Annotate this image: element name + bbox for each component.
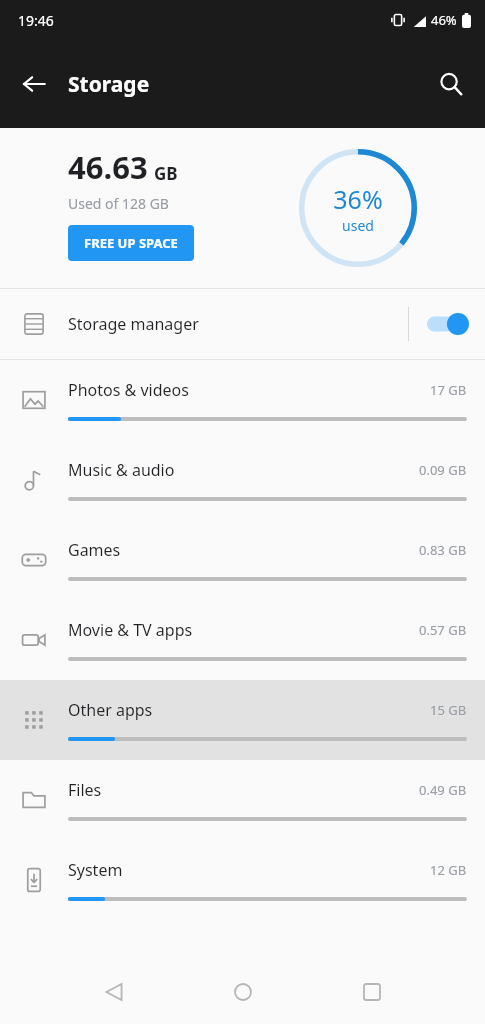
button[interactable]: Storage manager — [0, 289, 485, 359]
button[interactable]: Movie & TV apps — [0, 600, 485, 680]
staticText: Files — [68, 779, 419, 801]
staticText: Games — [68, 539, 419, 561]
staticText: 36% — [333, 182, 383, 216]
button[interactable]: FREE UP SPACE — [68, 225, 194, 261]
staticText: 0.09 GB — [419, 461, 467, 479]
staticText: 12 GB — [430, 861, 467, 879]
staticText: Used of 128 GB — [68, 194, 169, 213]
staticText: FREE UP SPACE — [84, 234, 178, 252]
button[interactable]: Photos & videos — [0, 360, 485, 440]
staticText: 15 GB — [430, 701, 467, 719]
staticText: 0.49 GB — [419, 781, 467, 799]
staticText: System — [68, 859, 430, 881]
button[interactable]: System — [0, 840, 485, 920]
staticText: 46.63 — [68, 146, 148, 188]
button[interactable]: Back — [90, 968, 138, 1016]
staticText: used — [342, 216, 374, 235]
button[interactable]: Games — [0, 520, 485, 600]
staticText: 19:46 — [18, 11, 54, 30]
staticText: Movie & TV apps — [68, 619, 419, 641]
staticText: 17 GB — [430, 381, 467, 399]
button[interactable]: Search — [427, 60, 475, 108]
staticText: Storage manager — [68, 313, 408, 335]
button[interactable]: Recent apps — [348, 968, 396, 1016]
button[interactable]: Home — [219, 968, 267, 1016]
button[interactable]: Music & audio — [0, 440, 485, 520]
staticText: 0.83 GB — [419, 541, 467, 559]
staticText: 46% — [431, 11, 457, 29]
staticText: Music & audio — [68, 459, 419, 481]
staticText: 0.57 GB — [419, 621, 467, 639]
button[interactable]: Storage manager toggle — [409, 289, 485, 359]
staticText: Storage — [68, 70, 150, 99]
staticText: Other apps — [68, 699, 430, 721]
button[interactable]: Back — [10, 60, 58, 108]
staticText: Photos & videos — [68, 379, 430, 401]
button[interactable]: Other apps — [0, 680, 485, 760]
button[interactable]: Files — [0, 760, 485, 840]
staticText: GB — [154, 162, 178, 185]
